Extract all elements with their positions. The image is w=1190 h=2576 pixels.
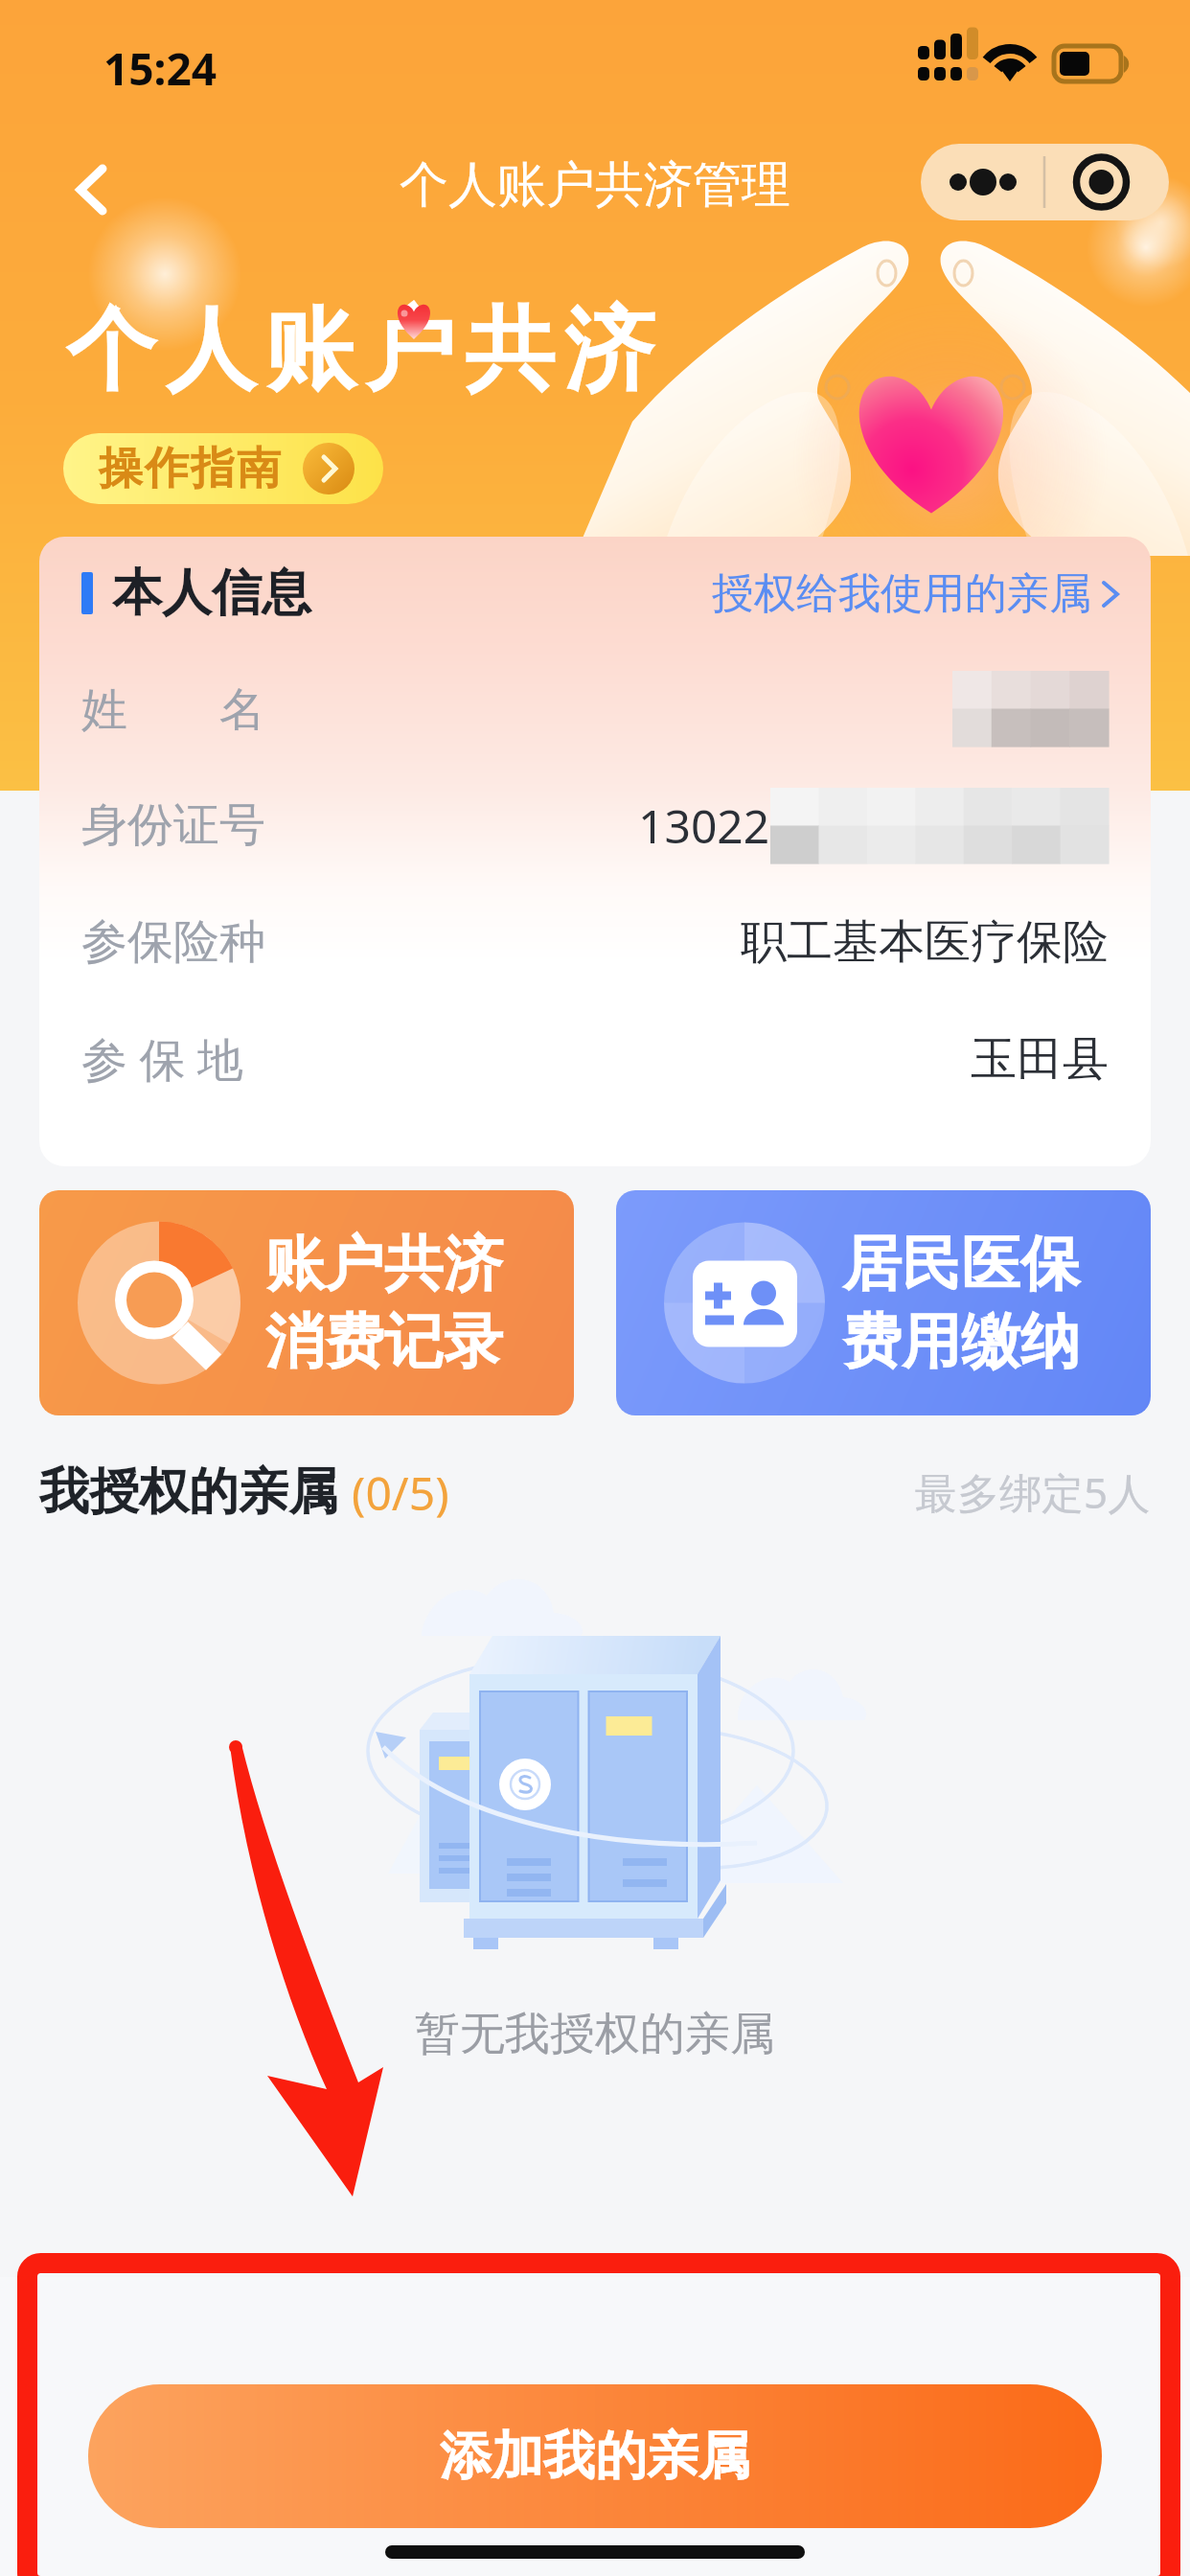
staticText: 个人账户共济	[61, 293, 659, 406]
staticText: 我授权的亲属	[39, 1460, 338, 1524]
staticText: 职工基本医疗保险	[741, 913, 1109, 971]
staticText: 授权给我使用的亲属	[712, 567, 1091, 620]
staticText: 玉田县	[971, 1030, 1109, 1088]
staticText: 最多绑定5人	[915, 1463, 1151, 1521]
staticText: 身份证号	[81, 796, 265, 854]
button[interactable]: 账户共济 消费记录	[39, 1190, 574, 1415]
staticText: 居民医保 费用缴纳	[842, 1227, 1080, 1380]
button[interactable]: More options	[921, 144, 1045, 220]
staticText: 本人信息	[112, 562, 311, 625]
staticText: 操作指南	[98, 441, 282, 496]
staticText: 个人账户共济管理	[400, 154, 790, 216]
staticText: 姓 名	[81, 677, 265, 740]
button[interactable]: 居民医保 费用缴纳	[616, 1190, 1151, 1415]
button[interactable]: Close mini program	[1045, 144, 1169, 220]
staticText: 账户共济 消费记录	[265, 1227, 503, 1380]
button[interactable]: 授权给我使用的亲属	[712, 567, 1126, 620]
staticText: 暂无我授权的亲属	[415, 2006, 775, 2062]
staticText: 15:24	[103, 38, 217, 99]
staticText: 参保险种	[81, 913, 265, 971]
button[interactable]: Back	[46, 142, 142, 220]
staticText: 13022	[638, 794, 770, 857]
staticText: (0/5)	[352, 1461, 449, 1524]
staticText: 添加我的亲属	[440, 2424, 750, 2489]
button[interactable]: 操作指南	[63, 433, 383, 504]
staticText: 参 保 地	[81, 1027, 243, 1091]
button[interactable]: 添加我的亲属	[88, 2384, 1102, 2528]
